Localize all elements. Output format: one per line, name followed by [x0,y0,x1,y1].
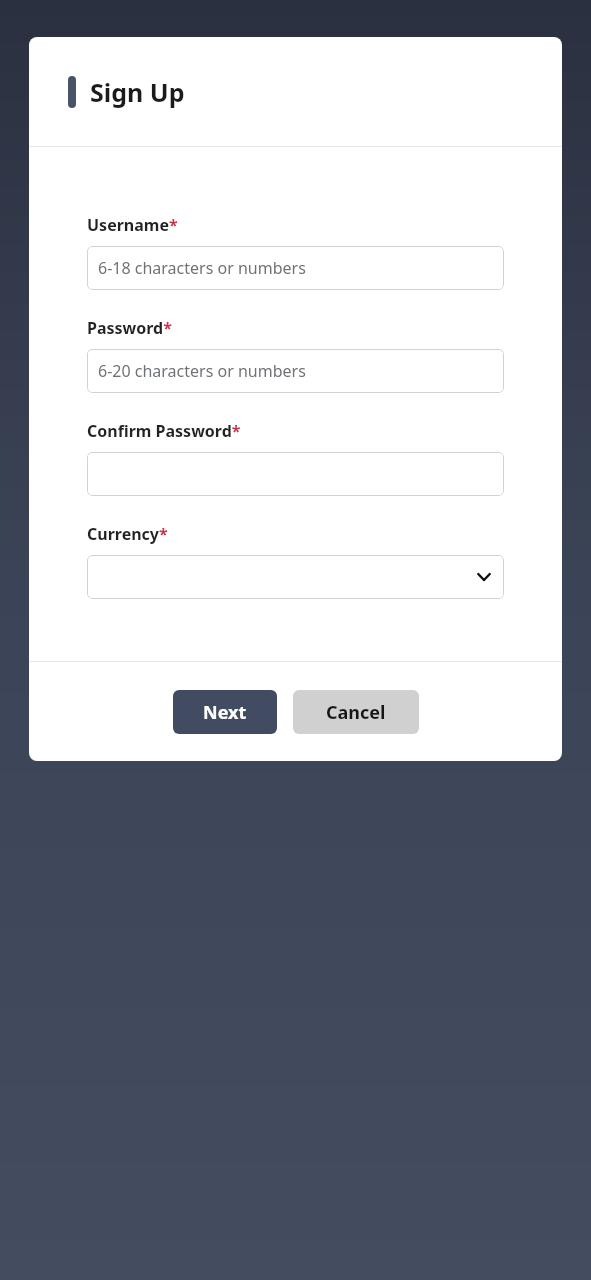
button[interactable]: Cancel [293,690,419,734]
button[interactable]: 6-20 characters or numbers [87,349,504,393]
staticText: Sign Up [90,75,185,109]
button[interactable]: Next [173,690,277,734]
staticText: Username* [87,214,178,236]
staticText: 6-18 characters or numbers [98,257,306,279]
staticText: Next [203,700,247,725]
staticText: Confirm Password* [87,420,241,442]
staticText: Cancel [326,700,386,725]
staticText: 6-20 characters or numbers [98,360,306,382]
button[interactable] [87,452,504,496]
staticText: Password* [87,317,172,339]
staticText: Currency* [87,523,168,545]
button[interactable]: 6-18 characters or numbers [87,246,504,290]
button[interactable] [87,555,504,599]
